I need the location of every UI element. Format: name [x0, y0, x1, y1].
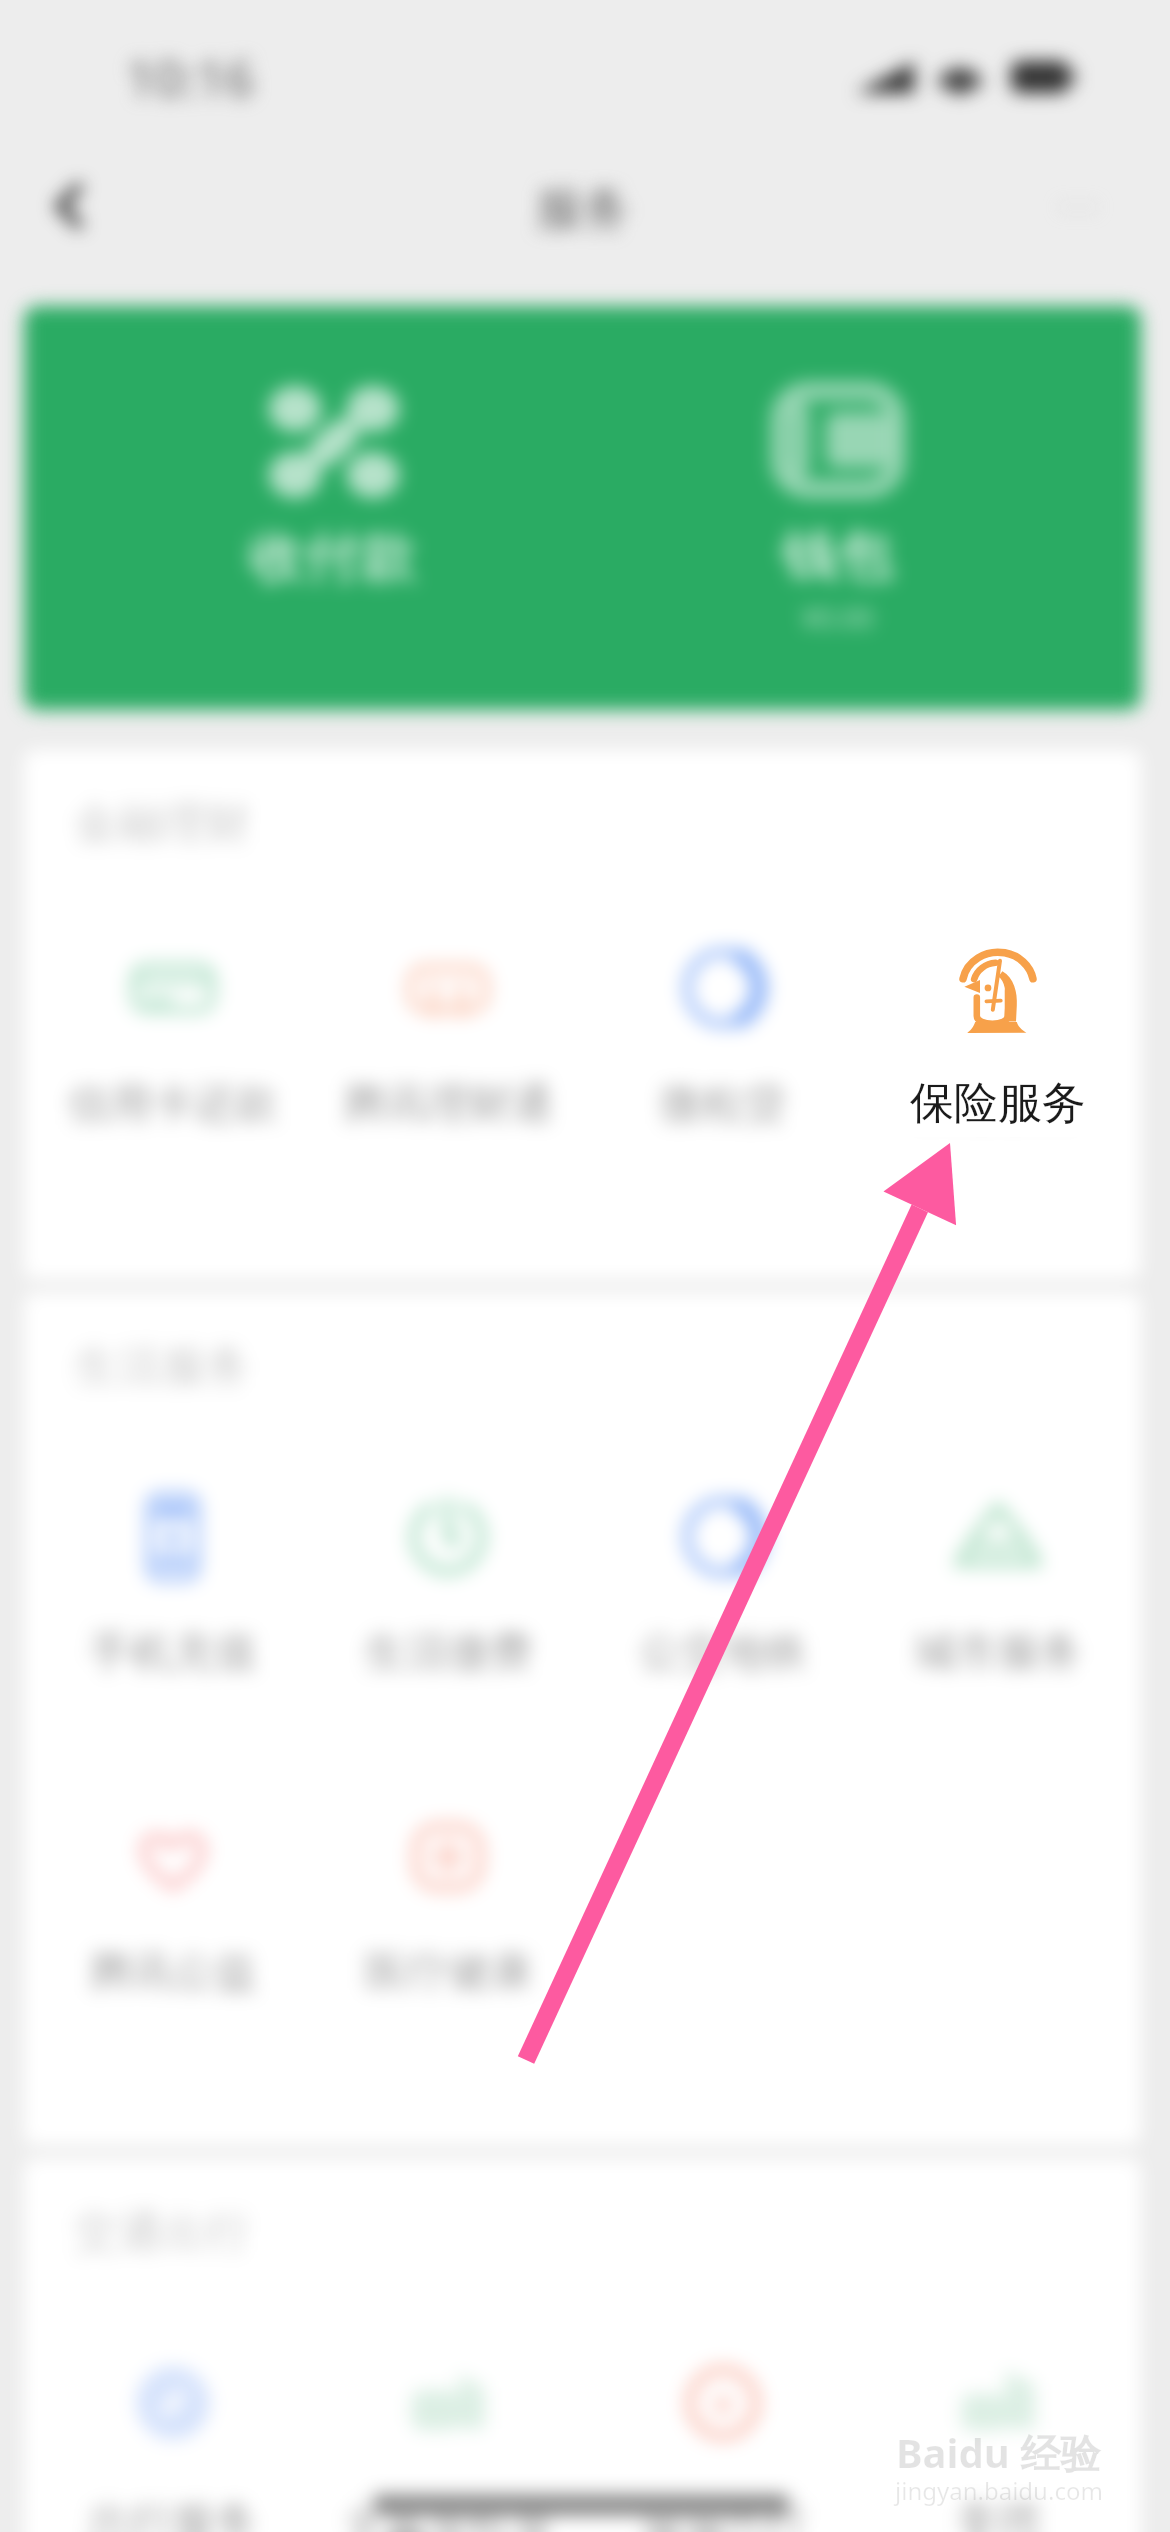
button[interactable]: 公交地铁 — [584, 1477, 862, 1686]
staticText: ¥0.00 — [802, 598, 874, 636]
button[interactable]: 手机充值 — [34, 1477, 312, 1686]
button[interactable]: 腾讯理财通 — [309, 928, 587, 1138]
staticText: 腾讯理财通 — [343, 1078, 553, 1131]
button[interactable]: 生活缴费 — [309, 1477, 587, 1686]
button[interactable]: 返回 — [22, 158, 118, 254]
staticText: 火车票机票 — [343, 2496, 553, 2532]
staticText: 医疗健康 — [364, 1946, 532, 1999]
button[interactable]: 收付款 / 钱包 — [24, 306, 1141, 710]
button[interactable]: 火车票机票 — [309, 2343, 587, 2532]
staticText: 生活服务 — [74, 1339, 250, 1394]
staticText: 美团 — [956, 2496, 1040, 2532]
staticText: 钱包 — [782, 520, 894, 591]
button[interactable]: 城市服务 — [859, 1477, 1137, 1686]
staticText: jingyan.baidu.com — [895, 2474, 1103, 2507]
staticText: 公交地铁 — [639, 1626, 807, 1679]
staticText: 10:16 — [126, 44, 254, 112]
staticText: 出行服务 — [89, 2496, 257, 2532]
staticText: 手机充值 — [89, 1626, 257, 1679]
button[interactable]: 腾讯公益 — [34, 1797, 312, 2006]
staticText: 城市服务 — [914, 1626, 1082, 1679]
button[interactable]: 出行服务 — [34, 2343, 312, 2532]
staticText: 保险服务 — [914, 1078, 1082, 1131]
staticText: 生活缴费 — [364, 1626, 532, 1679]
button[interactable]: 微粒贷 — [584, 928, 862, 1138]
staticText: 服务 — [536, 180, 630, 239]
staticText: 微粒贷 — [660, 1078, 786, 1131]
staticText: Baidu 经验 — [896, 2425, 1101, 2480]
staticText: 信用卡还款 — [68, 1078, 278, 1131]
staticText: 收付款 — [249, 522, 417, 593]
staticText: 滴滴出行 — [639, 2496, 807, 2532]
staticText: 交通出行 — [74, 2205, 250, 2260]
button[interactable]: 医疗健康 — [309, 1797, 587, 2006]
staticText: 保险服务 — [910, 1076, 1086, 1131]
button[interactable]: 滴滴出行 — [584, 2343, 862, 2532]
staticText: 腾讯公益 — [89, 1946, 257, 1999]
button[interactable]: 信用卡还款 — [34, 928, 312, 1138]
button[interactable]: 保险服务 — [859, 928, 1137, 1156]
staticText: 金融理财 — [74, 796, 250, 851]
button[interactable]: 美团 — [859, 2343, 1137, 2532]
button[interactable]: 保险服务 — [859, 928, 1137, 1138]
